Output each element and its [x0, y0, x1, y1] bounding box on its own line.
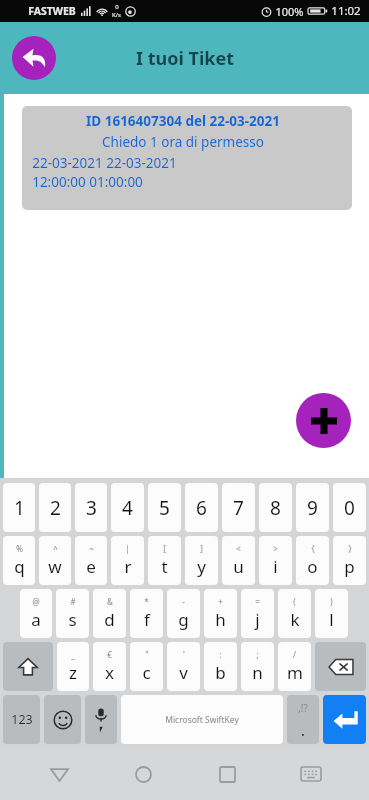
staticText: 6 [196, 495, 207, 521]
staticText: ; [256, 649, 259, 660]
button[interactable]: Key [3, 695, 40, 744]
button[interactable]: ^ [39, 536, 71, 585]
button[interactable]: - [167, 589, 200, 638]
button[interactable]: ~ [75, 536, 107, 585]
button[interactable]: Key [44, 695, 81, 744]
staticText: 3 [86, 495, 97, 521]
staticText: € [107, 649, 112, 660]
button[interactable]: Recents [205, 752, 249, 796]
staticText: [ [163, 543, 166, 554]
staticText: 123 [11, 711, 33, 728]
staticText: 5 [159, 495, 170, 521]
staticText: ,!? [298, 701, 308, 715]
button[interactable]: Hide keyboard [289, 752, 333, 796]
staticText: " [145, 649, 149, 660]
staticText: x [105, 661, 114, 684]
button[interactable]: * [130, 589, 163, 638]
staticText: k [290, 608, 300, 631]
button[interactable]: 0 [333, 483, 366, 532]
staticText: 9 [307, 495, 318, 521]
staticText: Chiedo 1 ora di permesso [102, 133, 264, 151]
button[interactable]: < [222, 536, 255, 585]
staticText: w [48, 555, 62, 578]
staticText: m [287, 661, 303, 684]
button[interactable]: } [333, 536, 366, 585]
staticText: i [273, 555, 278, 578]
staticText: s [68, 608, 77, 631]
staticText: g [178, 608, 189, 631]
button[interactable]: [ [148, 536, 181, 585]
button[interactable]: € [93, 642, 126, 691]
staticText: = [255, 596, 260, 607]
staticText: < [236, 543, 241, 554]
button[interactable]: Key [287, 695, 319, 744]
staticText: 0 [115, 3, 119, 11]
staticText: # [70, 596, 76, 607]
button[interactable]: ' [167, 642, 200, 691]
button[interactable]: 8 [259, 483, 292, 532]
staticText: l [329, 608, 334, 631]
button[interactable]: 7 [222, 483, 255, 532]
staticText: : [219, 649, 222, 660]
button[interactable]: Key [85, 695, 117, 744]
button[interactable]: 9 [296, 483, 329, 532]
button[interactable]: # [56, 589, 89, 638]
button[interactable]: ID 1616407304 del 22-03-2021 [22, 106, 352, 210]
staticText: _ [71, 649, 75, 660]
button[interactable]: ] [185, 536, 218, 585]
staticText: z [69, 661, 77, 684]
staticText: 1 [14, 495, 25, 521]
staticText: y [197, 555, 206, 578]
button[interactable]: @ [20, 589, 52, 638]
button[interactable]: Key [3, 642, 53, 691]
staticText: - [182, 596, 185, 607]
staticText: FASTWEB [28, 4, 76, 18]
button[interactable]: 3 [75, 483, 107, 532]
staticText: 11:02 [331, 3, 361, 19]
button[interactable]: Back [37, 752, 81, 796]
button[interactable]: ) [315, 589, 348, 638]
staticText: / [293, 649, 296, 660]
staticText: a [31, 608, 41, 631]
button[interactable]: Home [121, 752, 165, 796]
button[interactable]: & [93, 589, 126, 638]
button[interactable]: Add ticket [296, 393, 351, 448]
staticText: 100% [275, 4, 304, 19]
button[interactable]: ; [241, 642, 274, 691]
button[interactable]: _ [57, 642, 89, 691]
staticText: 7 [233, 495, 244, 521]
button[interactable]: Key [315, 642, 366, 691]
button[interactable]: = [241, 589, 274, 638]
staticText: ) [330, 596, 333, 607]
button[interactable]: % [3, 536, 35, 585]
button[interactable]: Key [121, 695, 283, 744]
staticText: 4 [122, 495, 133, 521]
button[interactable]: > [259, 536, 292, 585]
staticText: + [218, 596, 223, 607]
staticText: K/s [112, 11, 121, 19]
staticText: > [273, 543, 278, 554]
staticText: % [16, 543, 23, 554]
button[interactable]: 4 [111, 483, 144, 532]
button[interactable]: 5 [148, 483, 181, 532]
staticText: 12:00:00 01:00:00 [32, 173, 143, 191]
button[interactable]: 1 [3, 483, 35, 532]
button[interactable]: | [111, 536, 144, 585]
button[interactable]: " [130, 642, 163, 691]
staticText: | [125, 543, 130, 554]
staticText: * [144, 596, 149, 607]
button[interactable]: { [296, 536, 329, 585]
button[interactable]: : [204, 642, 237, 691]
button[interactable]: 6 [185, 483, 218, 532]
button[interactable]: Back [12, 36, 56, 80]
button[interactable]: Key [323, 695, 366, 744]
staticText: t [161, 555, 168, 578]
staticText: f [144, 608, 150, 631]
button[interactable]: + [204, 589, 237, 638]
button[interactable]: ( [278, 589, 311, 638]
staticText: e [86, 555, 96, 578]
staticText: c [142, 661, 151, 684]
staticText: ( [293, 596, 296, 607]
button[interactable]: 2 [39, 483, 71, 532]
button[interactable]: / [278, 642, 311, 691]
